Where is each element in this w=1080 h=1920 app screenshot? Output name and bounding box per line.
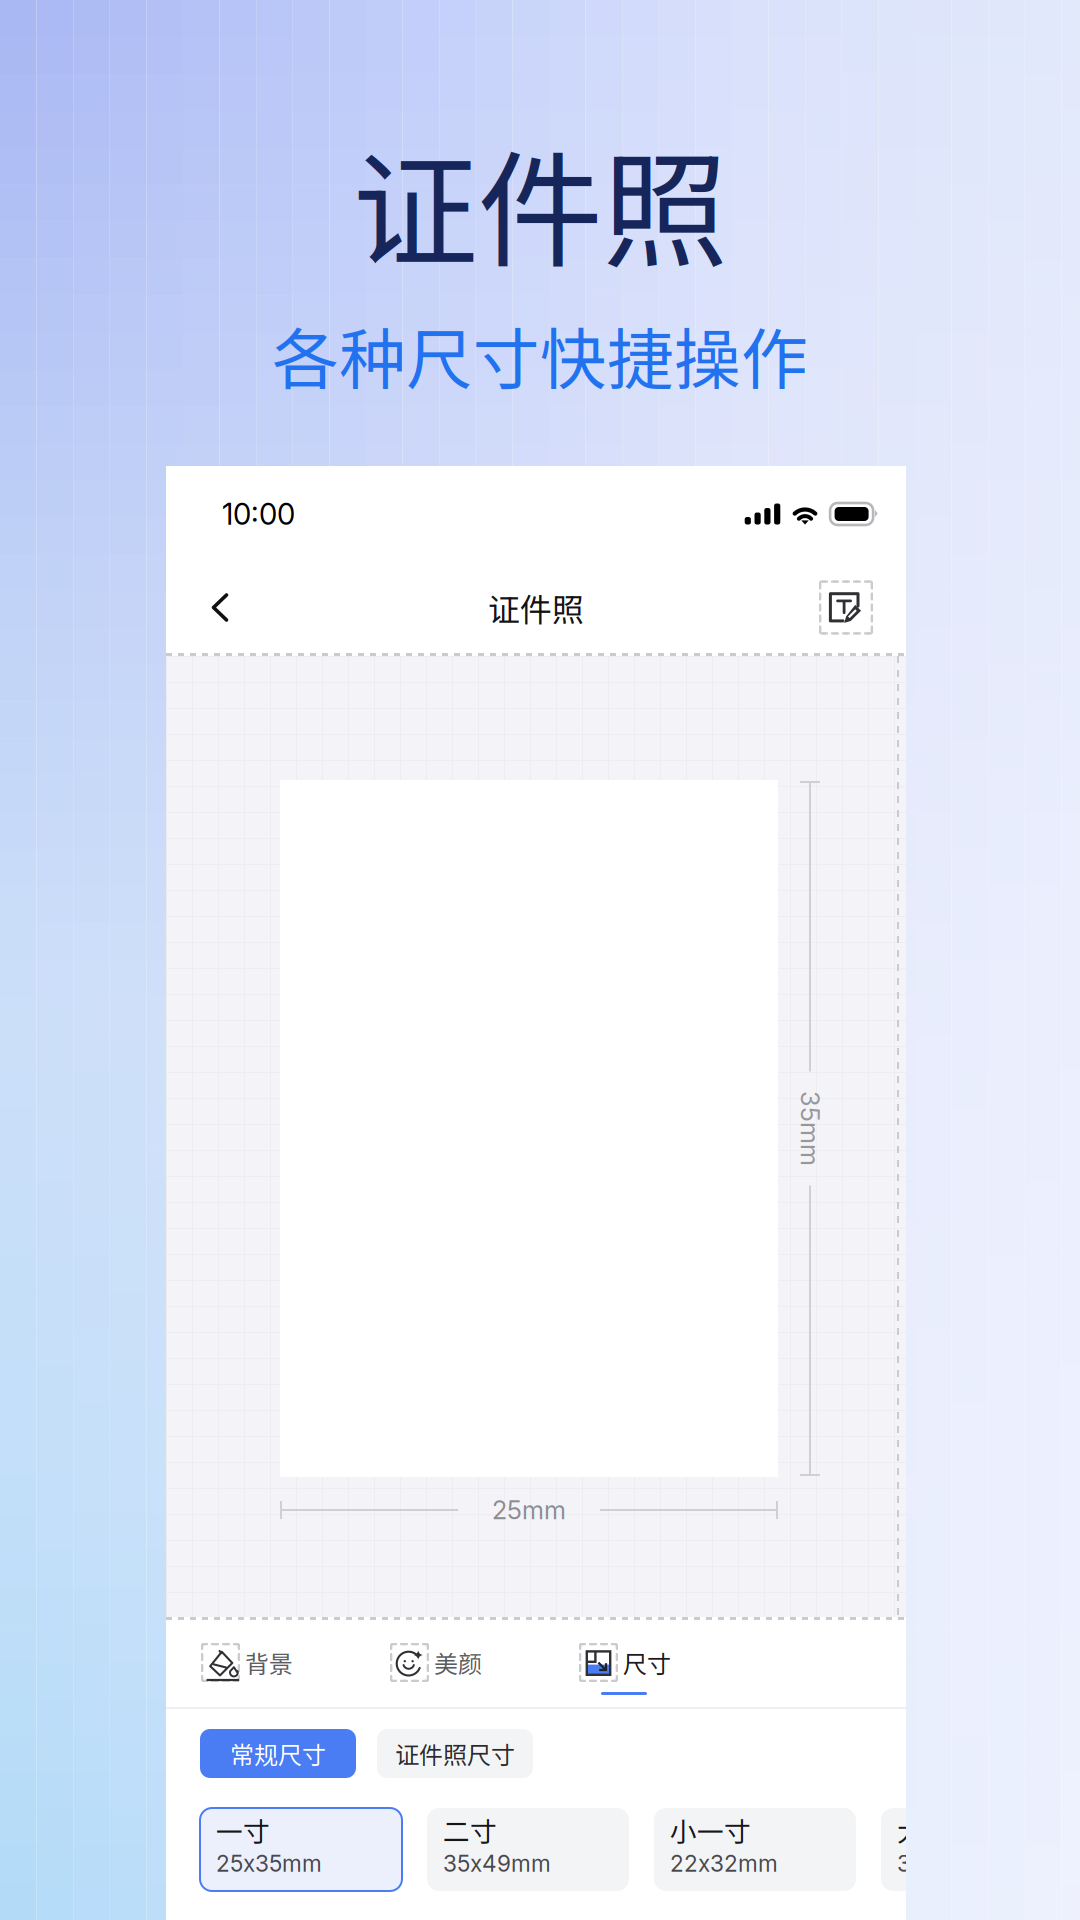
button[interactable]: 二寸: [427, 1808, 629, 1891]
staticText: 证件照尺寸: [395, 1736, 515, 1771]
staticText: 35x49mm: [443, 1850, 551, 1877]
button[interactable]: 背景: [201, 1643, 291, 1695]
staticText: 大一寸: [897, 1811, 978, 1849]
staticText: 10:00: [222, 496, 295, 532]
button[interactable]: 美颜: [390, 1643, 480, 1695]
staticText: 尺寸: [623, 1645, 671, 1680]
staticText: 证件照: [352, 111, 727, 293]
staticText: 一寸: [216, 1811, 270, 1849]
staticText: 背景: [245, 1645, 293, 1680]
staticText: 33x48mm: [897, 1850, 1006, 1877]
staticText: 常规尺寸: [230, 1736, 326, 1771]
staticText: 各种尺寸快捷操作: [272, 307, 808, 403]
button[interactable]: 证件照尺寸: [377, 1729, 533, 1778]
button[interactable]: Edit text: [814, 562, 878, 653]
staticText: 证件照: [488, 584, 584, 631]
staticText: 22x32mm: [670, 1850, 778, 1877]
button[interactable]: 尺寸: [579, 1643, 669, 1695]
button[interactable]: 大一寸: [881, 1808, 1080, 1891]
button[interactable]: 常规尺寸: [200, 1729, 356, 1778]
button[interactable]: Back: [194, 562, 246, 653]
button[interactable]: 小一寸: [654, 1808, 856, 1891]
staticText: 美颜: [434, 1645, 482, 1680]
staticText: 25mm: [492, 1495, 566, 1525]
staticText: 小一寸: [670, 1811, 751, 1849]
staticText: 二寸: [443, 1811, 497, 1849]
button[interactable]: 一寸: [200, 1808, 402, 1891]
staticText: 25x35mm: [216, 1850, 322, 1877]
staticText: 35mm: [772, 1113, 847, 1144]
